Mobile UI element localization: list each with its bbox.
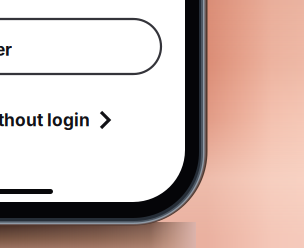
staticText: thout login xyxy=(0,109,90,130)
staticText: er xyxy=(0,39,12,60)
button[interactable]: thout login xyxy=(0,109,122,131)
button[interactable]: er xyxy=(0,0,200,95)
